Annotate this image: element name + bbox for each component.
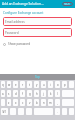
button[interactable]: v <box>27 99 32 106</box>
staticText: m <box>49 101 52 105</box>
staticText: v <box>29 101 31 105</box>
button[interactable]: , <box>55 99 60 106</box>
button[interactable]: !#1 <box>1 108 8 115</box>
button[interactable]: n <box>41 99 46 106</box>
button[interactable]: l <box>55 90 60 97</box>
staticText: j <box>43 92 44 96</box>
button[interactable]: Password <box>3 28 72 37</box>
staticText: q <box>2 83 4 87</box>
staticText: c <box>22 101 24 105</box>
button[interactable]: q <box>1 81 5 88</box>
staticText: g <box>29 92 31 96</box>
button[interactable]: g <box>27 90 32 97</box>
staticText: l <box>57 92 58 96</box>
button[interactable]: d <box>13 90 18 97</box>
button[interactable]: k <box>48 90 53 97</box>
staticText: x <box>15 101 17 105</box>
button[interactable]: r <box>20 81 25 88</box>
staticText: Configure Exchange account <box>3 11 44 15</box>
staticText: a <box>2 92 4 96</box>
button[interactable]: Show password <box>3 42 30 46</box>
staticText: Password <box>5 31 19 35</box>
button[interactable]: w <box>7 81 11 88</box>
button[interactable]: o <box>55 81 60 88</box>
staticText: s <box>8 92 10 96</box>
staticText: t <box>29 83 31 87</box>
staticText: w <box>8 83 11 87</box>
button[interactable]: Email address <box>3 17 72 26</box>
button[interactable]: s <box>7 90 11 97</box>
staticText: z <box>8 101 10 105</box>
staticText: !#1 <box>2 110 7 114</box>
button[interactable]: t <box>27 81 32 88</box>
button[interactable]: y <box>34 81 39 88</box>
button[interactable]: j <box>41 90 46 97</box>
button[interactable]: Shift <box>1 99 5 106</box>
staticText: i <box>50 83 51 87</box>
staticText: y <box>36 83 38 87</box>
button[interactable]: f <box>20 90 25 97</box>
staticText: , <box>57 101 58 105</box>
button[interactable]: c <box>20 99 25 106</box>
staticText: NEXT <box>64 2 71 6</box>
staticText: Show password <box>8 42 30 46</box>
button[interactable]: a <box>1 90 5 97</box>
staticText: p <box>64 83 66 87</box>
staticText: Email address <box>5 20 25 24</box>
button[interactable]: u <box>41 81 46 88</box>
button[interactable]: b <box>34 99 39 106</box>
staticText: Add an Exchange Solution… <box>2 2 61 6</box>
staticText: h <box>36 92 38 96</box>
staticText: n <box>43 101 45 105</box>
button[interactable]: m <box>48 99 53 106</box>
staticText: . <box>57 110 58 114</box>
button[interactable]: e <box>13 81 18 88</box>
staticText: d <box>15 92 17 96</box>
staticText: k <box>50 92 52 96</box>
button[interactable]: i <box>48 81 53 88</box>
button[interactable]: x <box>13 99 18 106</box>
staticText: b <box>36 101 38 105</box>
button[interactable]: NEXT <box>62 2 73 6</box>
staticText: r <box>22 83 24 87</box>
staticText: Tap <box>35 75 40 79</box>
staticText: u <box>43 83 45 87</box>
staticText: o <box>57 83 59 87</box>
button[interactable]: h <box>34 90 39 97</box>
staticText: e <box>15 83 17 87</box>
button[interactable]: z <box>7 99 11 106</box>
button[interactable]: . <box>55 108 60 115</box>
staticText: f <box>22 92 23 96</box>
button[interactable]: p <box>62 81 67 88</box>
